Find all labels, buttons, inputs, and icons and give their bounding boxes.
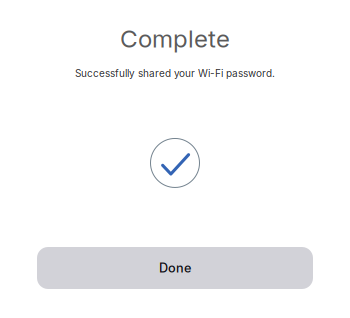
button[interactable]: Done — [37, 247, 313, 289]
staticText: Done — [159, 260, 191, 276]
staticText: Complete — [120, 24, 230, 53]
staticText: Successfully shared your Wi-Fi password. — [75, 67, 275, 79]
